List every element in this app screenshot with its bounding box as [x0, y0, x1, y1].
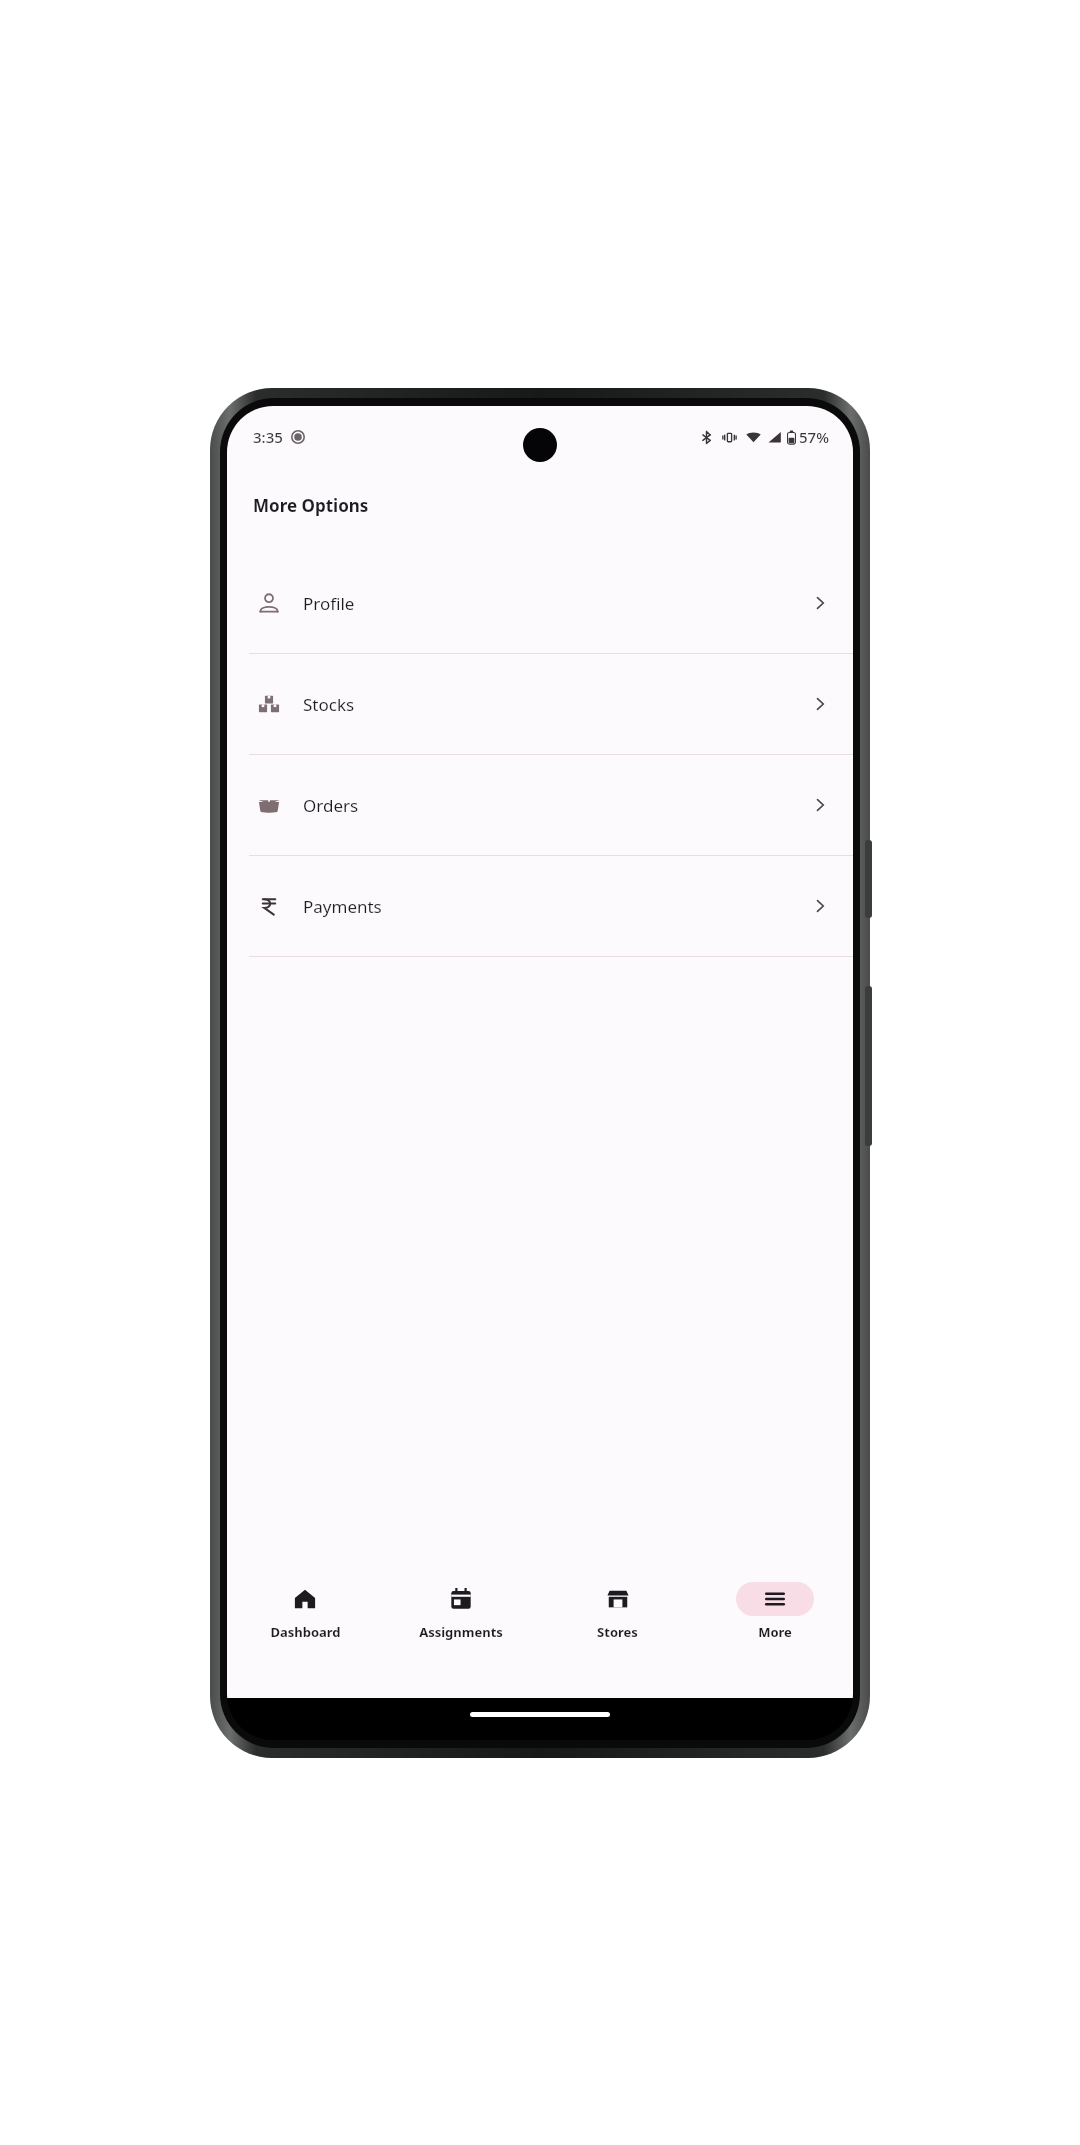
- button[interactable]: Stores: [539, 1582, 696, 1698]
- staticText: More: [758, 1623, 792, 1641]
- staticText: Dashboard: [270, 1623, 341, 1641]
- button[interactable]: More: [696, 1582, 853, 1698]
- button[interactable]: Assignments: [383, 1582, 539, 1698]
- button[interactable]: Orders: [227, 755, 853, 855]
- button[interactable]: Payments: [227, 856, 853, 956]
- staticText: Stores: [597, 1623, 638, 1641]
- button[interactable]: Dashboard: [227, 1582, 383, 1698]
- staticText: 3:35: [253, 427, 283, 447]
- button[interactable]: Stocks: [227, 654, 853, 754]
- staticText: Stocks: [303, 693, 355, 716]
- staticText: Orders: [303, 794, 359, 817]
- staticText: 57%: [799, 427, 829, 447]
- button[interactable]: Profile: [227, 553, 853, 653]
- staticText: Payments: [303, 895, 382, 918]
- staticText: Assignments: [419, 1623, 503, 1641]
- staticText: Profile: [303, 592, 355, 615]
- staticText: More Options: [253, 494, 369, 517]
